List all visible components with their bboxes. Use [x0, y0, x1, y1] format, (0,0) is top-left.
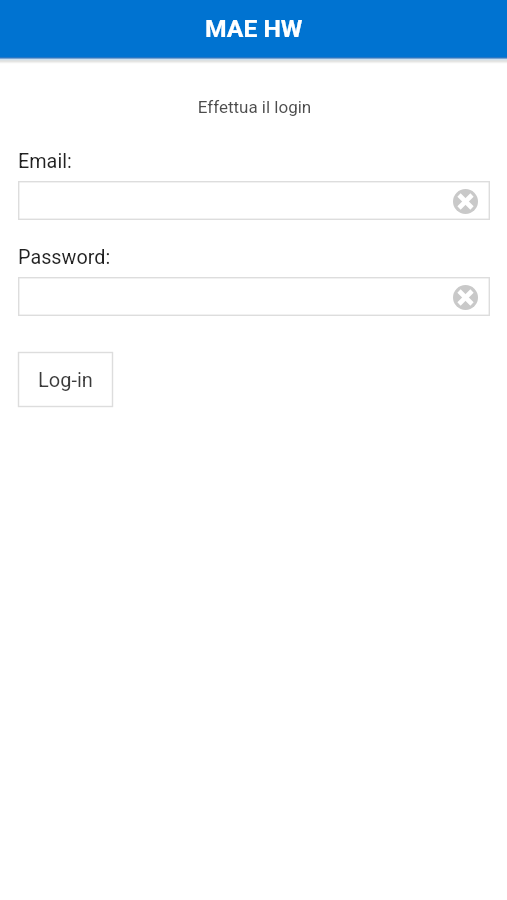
button[interactable]: Log-in — [18, 352, 113, 407]
staticText: Log-in — [38, 368, 93, 391]
staticText: Email: — [18, 150, 72, 173]
button[interactable]: Password — [18, 277, 490, 316]
button[interactable]: Clear Password — [452, 284, 478, 310]
staticText: Password: — [18, 246, 111, 269]
staticText: Effettua il login — [1, 97, 507, 117]
staticText: MAE HW — [205, 14, 303, 43]
button[interactable]: Email — [18, 181, 490, 220]
button[interactable]: Clear Email — [452, 188, 478, 214]
